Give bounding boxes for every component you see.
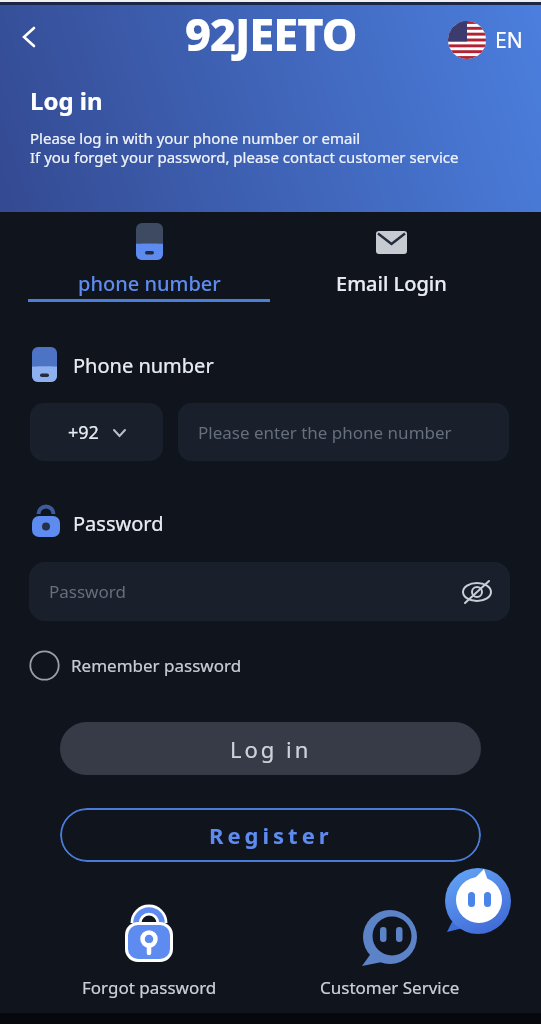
staticText: Forgot password — [82, 976, 217, 999]
button[interactable]: Please enter the phone number — [178, 403, 509, 461]
button[interactable] — [20, 26, 40, 48]
staticText: Please enter the phone number — [198, 421, 452, 444]
staticText: Please log in with your phone number or … — [30, 128, 361, 148]
button[interactable]: phone number — [28, 214, 270, 302]
button[interactable]: Customer Service — [281, 900, 499, 1004]
button[interactable]: Forgot password — [40, 900, 258, 1004]
staticText: Password — [73, 510, 164, 537]
button[interactable]: Remember password — [29, 650, 242, 681]
staticText: 92JEETO — [185, 3, 357, 64]
staticText: phone number — [78, 270, 221, 297]
button[interactable]: EN — [448, 21, 523, 59]
button[interactable]: Register — [60, 808, 481, 862]
staticText: Log in — [30, 84, 103, 117]
staticText: Password — [49, 580, 126, 603]
button[interactable]: Password — [29, 562, 510, 621]
staticText: Register — [209, 820, 333, 850]
staticText: Log in — [230, 734, 312, 764]
button[interactable]: Log in — [60, 722, 481, 775]
staticText: Phone number — [73, 352, 214, 379]
button[interactable]: Email Login — [270, 214, 512, 302]
staticText: EN — [495, 26, 523, 55]
staticText: Remember password — [71, 654, 242, 677]
staticText: +92 — [68, 420, 99, 445]
button[interactable]: +92 — [30, 403, 163, 461]
staticText: Customer Service — [320, 976, 460, 999]
button[interactable] — [443, 866, 513, 936]
staticText: If you forget your password, please cont… — [30, 147, 459, 167]
staticText: Email Login — [336, 270, 447, 297]
